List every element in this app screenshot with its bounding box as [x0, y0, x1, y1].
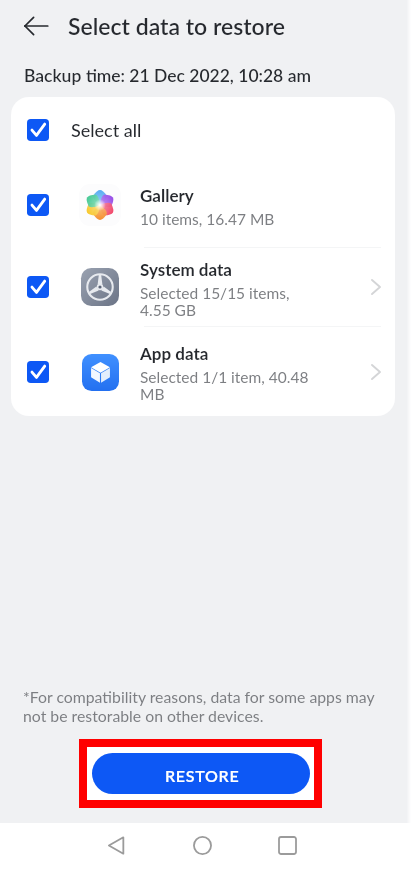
staticText: Backup time: 21 Dec 2022, 10:28 am	[24, 65, 311, 86]
button[interactable]: Back	[12, 2, 60, 50]
staticText: Select data to restore	[68, 12, 286, 40]
button[interactable]: App data	[11, 327, 395, 416]
staticText: *For compatibility reasons, data for som…	[23, 687, 383, 725]
button[interactable]: Gallery	[11, 163, 395, 247]
staticText: 10 items, 16.47 MB	[140, 210, 275, 229]
staticText: Gallery	[140, 185, 194, 205]
staticText: System data	[140, 259, 232, 279]
button[interactable]: Recent apps	[263, 824, 311, 866]
staticText: RESTORE	[165, 766, 240, 785]
staticText: Select all	[71, 119, 142, 141]
button[interactable]: Home	[178, 824, 226, 866]
staticText: App data	[140, 343, 209, 363]
staticText: Selected 1/1 item, 40.48 MB	[140, 368, 309, 404]
button[interactable]: RESTORE	[92, 753, 310, 794]
staticText: Selected 15/15 items, 4.55 GB	[140, 284, 290, 320]
button[interactable]: Select all	[11, 97, 395, 163]
button[interactable]: System data	[11, 248, 395, 326]
button[interactable]: Back	[92, 824, 140, 866]
